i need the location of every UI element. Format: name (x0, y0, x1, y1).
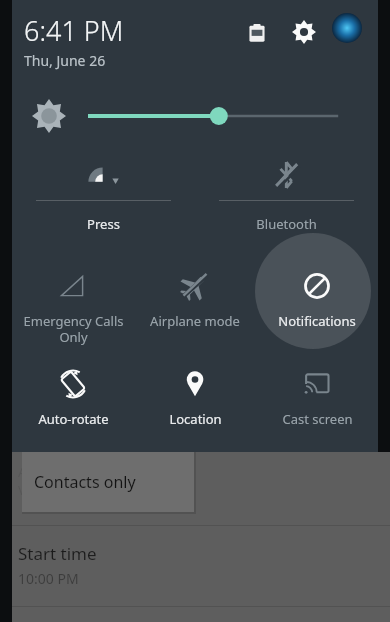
button[interactable] (88, 101, 342, 131)
button[interactable]: User profile (332, 13, 362, 43)
staticText: Start time (18, 542, 97, 565)
staticText: Airplane mode (150, 312, 240, 330)
button[interactable]: Airplane mode (134, 258, 256, 356)
button[interactable]: Cast screen (256, 356, 378, 446)
button[interactable]: Emergency Calls Only (12, 258, 134, 356)
staticText: 10:00 PM (18, 569, 79, 588)
staticText: Location (169, 410, 222, 428)
staticText: Contacts only (34, 471, 136, 493)
staticText: Cast screen (282, 410, 353, 428)
button[interactable]: Auto-rotate (12, 356, 134, 446)
staticText: Emergency Calls Only (23, 312, 124, 345)
staticText: Thu, June 26 (24, 51, 106, 70)
button[interactable]: Settings (286, 14, 322, 50)
staticText: Notifications (278, 312, 356, 330)
button[interactable]: Start time (0, 525, 390, 606)
staticText: Press (87, 215, 120, 233)
staticText: 6:41 PM (24, 12, 124, 49)
button[interactable]: Battery (240, 16, 274, 50)
button[interactable]: Press (12, 150, 195, 250)
button[interactable]: Location (134, 356, 256, 446)
staticText: A V (18, 463, 27, 499)
button[interactable]: Bluetooth (195, 150, 378, 250)
staticText: Auto-rotate (38, 410, 109, 428)
button[interactable]: Notifications (256, 258, 378, 356)
staticText: Bluetooth (256, 215, 317, 233)
button[interactable]: Contacts only (22, 452, 194, 512)
